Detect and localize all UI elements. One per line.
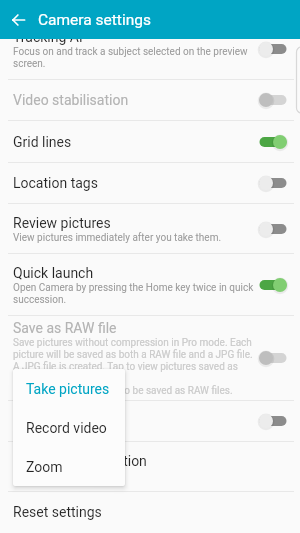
button[interactable]: Tracking AF <box>0 19 300 79</box>
staticText: Tracking AF <box>13 29 87 45</box>
staticText: Camera settings <box>38 11 151 29</box>
staticText: Voice control <box>13 413 95 429</box>
staticText: Grid lines <box>13 134 72 150</box>
staticText: Quick launch <box>13 265 94 281</box>
button[interactable]: Review pictures <box>0 204 300 253</box>
staticText: Record video <box>26 420 107 436</box>
staticText: View pictures immediately after you take… <box>13 231 222 243</box>
staticText: Review pictures <box>13 215 111 231</box>
staticText: Save as RAW file <box>13 320 117 336</box>
button[interactable]: Location tags <box>0 163 300 203</box>
staticText: Zoom <box>26 459 63 475</box>
button[interactable]: Reset settings <box>0 492 300 532</box>
staticText: Video stabilisation <box>13 92 129 108</box>
staticText: Open Camera by pressing the Home key twi… <box>13 281 254 305</box>
button[interactable]: Save as RAW file <box>0 316 300 400</box>
staticText: Focus on and track a subject selected on… <box>13 45 254 69</box>
button[interactable]: Back <box>0 0 36 39</box>
button[interactable]: Quick launch <box>0 254 300 315</box>
staticText: Take pictures <box>26 381 110 397</box>
button[interactable]: Take pictures <box>13 369 125 408</box>
button[interactable]: Video stabilisation <box>0 80 300 120</box>
button[interactable]: Zoom <box>13 447 125 486</box>
staticText: Take pictures <box>13 469 73 481</box>
button[interactable]: Record video <box>13 408 125 447</box>
staticText: Save pictures without compression in Pro… <box>13 336 254 396</box>
button[interactable]: Volume keys function <box>0 442 300 491</box>
button[interactable]: Voice control <box>0 401 300 441</box>
staticText: Location tags <box>13 175 98 191</box>
button[interactable]: Grid lines <box>0 121 300 162</box>
staticText: Volume keys function <box>13 453 147 469</box>
staticText: Reset settings <box>13 504 102 520</box>
